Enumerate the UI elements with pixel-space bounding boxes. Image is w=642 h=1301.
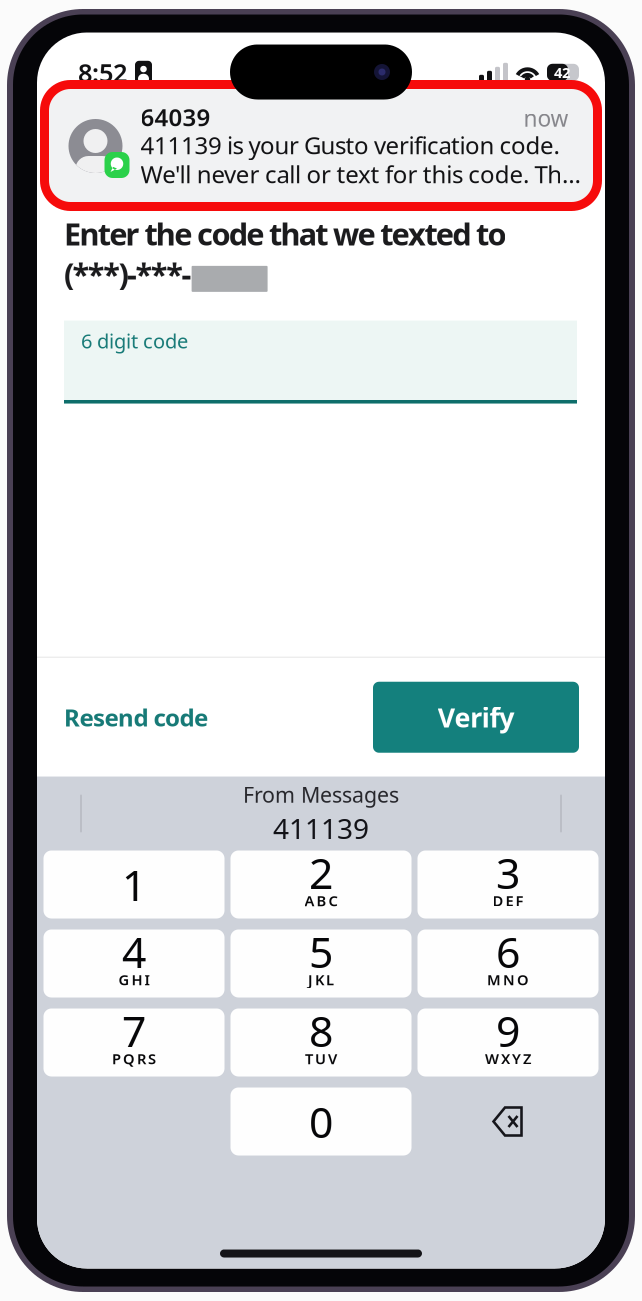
button[interactable]: 6 digit code [64, 320, 577, 403]
staticText: 411139 [273, 810, 369, 847]
staticText: 4 [122, 923, 146, 980]
button[interactable]: 4 [43, 929, 224, 997]
staticText: 5 [309, 923, 333, 980]
staticText: Enter the code that we texted to [64, 213, 506, 254]
button[interactable]: Verify [373, 682, 579, 753]
staticText: 9 [496, 1002, 520, 1059]
staticText: JKL [308, 970, 334, 989]
button[interactable]: 3 [417, 850, 598, 918]
staticText: 2 [309, 844, 333, 901]
staticText: 411139 is your Gusto verification code. [140, 129, 559, 161]
staticText: Verify [438, 699, 514, 735]
button[interactable]: 7 [43, 1008, 224, 1076]
button[interactable]: 8 [230, 1008, 411, 1076]
staticText: 42 [554, 63, 570, 82]
button[interactable]: 9 [417, 1008, 598, 1076]
staticText: 7 [122, 1002, 146, 1059]
staticText: WXYZ [485, 1049, 531, 1068]
staticText: ABC [304, 891, 337, 910]
staticText: 8:52 [78, 55, 127, 89]
button[interactable]: 6 [417, 929, 598, 997]
staticText: PQRS [112, 1049, 156, 1068]
staticText: GHI [118, 970, 149, 989]
staticText: 8 [309, 1002, 333, 1059]
staticText: 3 [496, 844, 520, 901]
staticText: 0 [309, 1093, 333, 1150]
staticText: 1 [122, 856, 146, 913]
button[interactable]: 1 [43, 850, 224, 918]
button[interactable]: Resend code [64, 677, 208, 757]
staticText: 6 [496, 923, 520, 980]
staticText: 64039 [140, 101, 210, 133]
button[interactable]: 0 [230, 1087, 411, 1155]
button[interactable]: 5 [230, 929, 411, 997]
staticText: MNO [487, 970, 529, 989]
staticText: Resend code [64, 701, 208, 733]
staticText: DEF [492, 891, 523, 910]
staticText: 6 digit code [81, 327, 188, 354]
staticText: We'll never call or text for this code. … [140, 158, 581, 190]
button[interactable]: 2 [230, 850, 411, 918]
staticText: TUV [305, 1049, 337, 1068]
staticText: now [523, 103, 568, 133]
staticText: From Messages [243, 780, 399, 808]
staticText: (***)-***- [64, 253, 192, 294]
button[interactable]: Delete [417, 1087, 598, 1155]
